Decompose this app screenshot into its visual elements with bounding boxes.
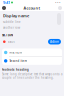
staticText: subtitle line — [3, 20, 21, 24]
staticText: Display name — [3, 13, 29, 18]
staticText: 9:41 — [3, 0, 10, 5]
button[interactable]: Second item — [2, 57, 62, 65]
button[interactable]: More — [58, 6, 62, 10]
button[interactable]: First item — [2, 48, 62, 56]
staticText: Some long descriptive text that wraps on… — [2, 72, 62, 79]
button[interactable]: Action — [48, 39, 61, 44]
staticText: Account — [23, 5, 40, 11]
button[interactable]: Profile — [2, 6, 6, 10]
staticText: Action — [50, 40, 59, 43]
staticText: Second item — [9, 59, 26, 63]
staticText: First item — [9, 51, 21, 54]
staticText: Footnote heading — [2, 68, 29, 71]
staticText: another row — [3, 26, 20, 29]
staticText: status — [8, 40, 15, 43]
staticText: SECTION — [2, 33, 13, 37]
staticText: ••• — [55, 0, 61, 5]
